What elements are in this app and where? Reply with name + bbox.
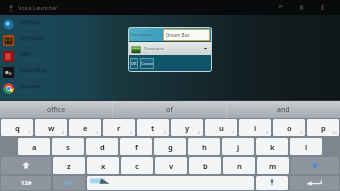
button[interactable]: Chrome [0, 80, 120, 96]
staticText: m [269, 161, 277, 171]
button[interactable]: Dreambox [129, 42, 211, 55]
staticText: k [270, 142, 275, 152]
staticText: Voice Launcher [18, 4, 58, 11]
button[interactable]: h [188, 138, 220, 155]
button[interactable]: g [154, 138, 186, 155]
button[interactable]: OK [130, 58, 138, 69]
button[interactable]: s [52, 138, 84, 155]
staticText: h [202, 142, 207, 152]
button[interactable]: Shift [1, 157, 51, 174]
button[interactable]: Show files [0, 64, 120, 80]
staticText: 12# [21, 179, 32, 187]
staticText: p [321, 123, 326, 133]
button[interactable]: j [222, 138, 254, 155]
staticText: Home [19, 41, 32, 47]
staticText: office [47, 105, 66, 115]
button[interactable]: Back [275, 2, 286, 13]
staticText: 5 [164, 130, 167, 135]
staticText: w [48, 123, 55, 133]
button[interactable]: n [223, 157, 255, 174]
staticText: b [203, 161, 208, 171]
button[interactable]: 12# [1, 176, 51, 190]
button[interactable]: k [256, 138, 288, 155]
staticText: Dream Box [166, 32, 190, 38]
button[interactable]: b [189, 157, 221, 174]
staticText: n [237, 161, 242, 171]
button[interactable]: o [273, 119, 305, 136]
button[interactable]: e [69, 119, 101, 136]
button[interactable]: and [227, 101, 340, 118]
staticText: and [277, 105, 290, 115]
button[interactable]: d [86, 138, 118, 155]
staticText: d [100, 142, 105, 152]
staticText: My Home [19, 34, 46, 41]
staticText: v [169, 161, 174, 171]
button[interactable]: Android [0, 16, 120, 32]
staticText: r [117, 123, 121, 133]
button[interactable]: i [239, 119, 271, 136]
button[interactable]: t [137, 119, 169, 136]
staticText: ClearFolder [130, 32, 153, 37]
staticText: t [151, 123, 155, 133]
button[interactable]: IMO [0, 48, 120, 64]
staticText: Dreambox [144, 46, 164, 51]
button[interactable]: u [205, 119, 237, 136]
staticText: x [101, 161, 106, 171]
staticText: q [15, 123, 20, 133]
button[interactable]: My Home [0, 32, 120, 48]
button[interactable]: f [120, 138, 152, 155]
button[interactable]: EN [53, 176, 85, 190]
staticText: 8 [266, 130, 269, 135]
button[interactable]: Microphone [256, 176, 288, 190]
button[interactable]: w [35, 119, 67, 136]
button[interactable]: l [290, 138, 322, 155]
button[interactable]: office [0, 101, 112, 118]
staticText: 4 [130, 130, 133, 135]
button[interactable]: q [1, 119, 33, 136]
button[interactable]: Space [87, 176, 254, 190]
staticText: j [237, 142, 240, 152]
staticText: c [135, 161, 139, 171]
button[interactable]: x [87, 157, 119, 174]
button[interactable]: Backspace [291, 157, 339, 174]
staticText: Super Video [19, 57, 45, 63]
staticText: 6 [198, 130, 201, 135]
staticText: EN [65, 179, 74, 187]
staticText: e [83, 123, 88, 133]
staticText: 7 [232, 130, 235, 135]
staticText: 1 [28, 130, 31, 135]
staticText: o [287, 123, 292, 133]
staticText: z [67, 161, 71, 171]
staticText: g [168, 142, 173, 152]
button[interactable]: Recents [317, 2, 328, 13]
staticText: 10 [332, 130, 337, 135]
button[interactable]: r [103, 119, 135, 136]
staticText: u [219, 123, 224, 133]
staticText: Show files [19, 66, 47, 73]
staticText: 2 [62, 130, 65, 135]
button[interactable]: p [307, 119, 339, 136]
button[interactable]: of [113, 101, 226, 118]
button[interactable]: a [18, 138, 50, 155]
staticText: IMO [19, 50, 31, 57]
button[interactable]: v [155, 157, 187, 174]
staticText: s [66, 142, 70, 152]
staticText: OK [131, 61, 137, 66]
staticText: Cancel [141, 61, 154, 66]
button[interactable]: Enter [290, 176, 339, 190]
button[interactable]: c [121, 157, 153, 174]
button[interactable]: Home [296, 2, 307, 13]
staticText: l [305, 142, 308, 152]
staticText: Chrome [19, 82, 41, 89]
staticText: Launcher [19, 25, 39, 31]
staticText: f [135, 142, 138, 152]
button[interactable]: y [171, 119, 203, 136]
staticText: of [166, 105, 173, 115]
staticText: a [32, 142, 37, 152]
staticText: 3 [96, 130, 99, 135]
button[interactable]: z [53, 157, 85, 174]
staticText: 9 [300, 130, 303, 135]
button[interactable]: Cancel [140, 58, 154, 69]
button[interactable]: m [257, 157, 289, 174]
staticText: y [185, 123, 190, 133]
